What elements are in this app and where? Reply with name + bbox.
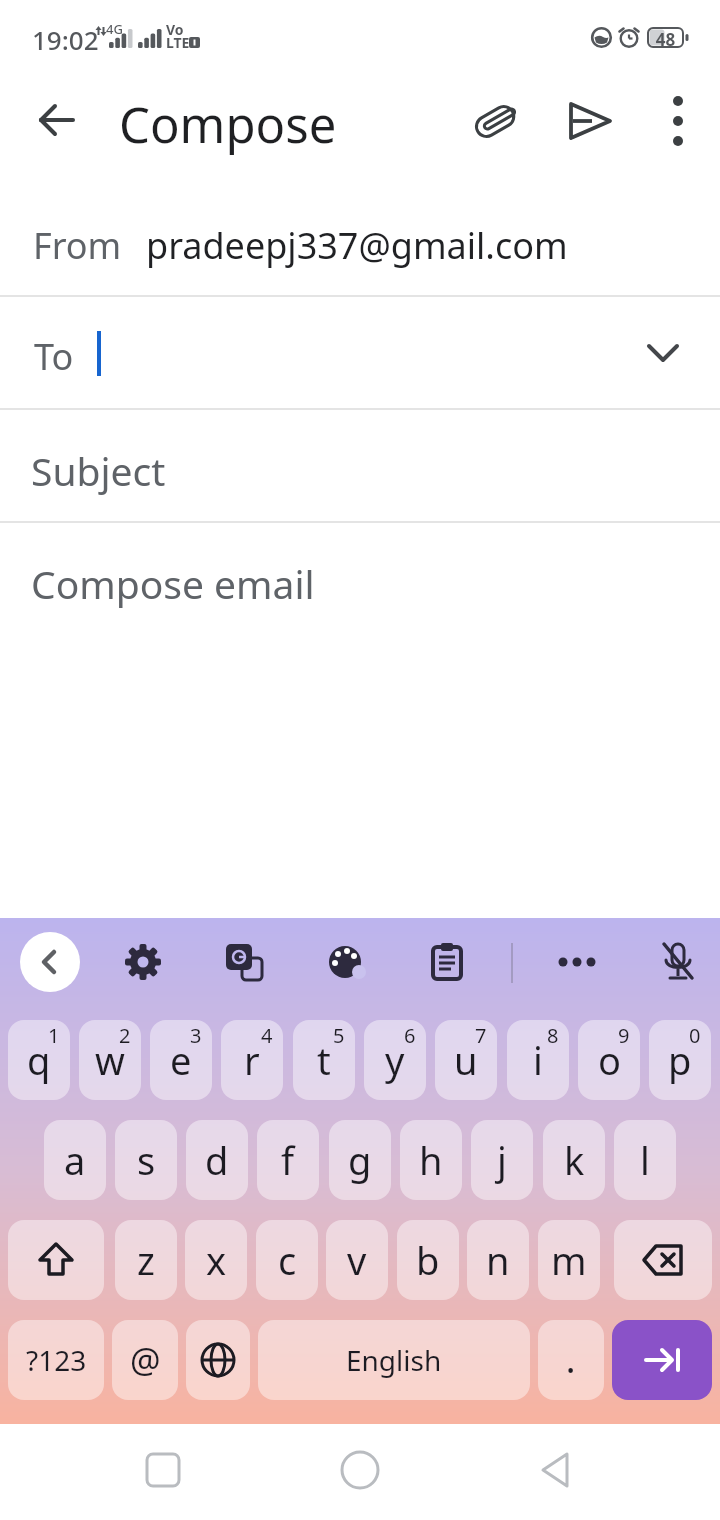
staticText: q bbox=[27, 1034, 51, 1086]
staticText: t bbox=[317, 1034, 331, 1086]
staticText: h bbox=[419, 1134, 443, 1186]
button[interactable]: e bbox=[150, 1020, 212, 1100]
button[interactable] bbox=[33, 96, 81, 144]
button[interactable]: w bbox=[79, 1020, 141, 1100]
staticText: 5 bbox=[333, 1022, 345, 1049]
staticText: c bbox=[278, 1234, 297, 1286]
button[interactable] bbox=[220, 938, 268, 986]
button[interactable]: v bbox=[326, 1220, 388, 1300]
button[interactable] bbox=[614, 1220, 712, 1300]
button[interactable] bbox=[470, 95, 522, 147]
staticText: 9 bbox=[618, 1022, 630, 1049]
staticText: o bbox=[598, 1034, 621, 1086]
staticText: 4G bbox=[106, 20, 123, 38]
staticText: English bbox=[346, 1341, 442, 1379]
button[interactable]: t bbox=[293, 1020, 355, 1100]
staticText: pradeepj337@gmail.com bbox=[146, 221, 568, 270]
staticText: e bbox=[170, 1034, 192, 1086]
button[interactable]: m bbox=[538, 1220, 600, 1300]
staticText: i bbox=[533, 1034, 543, 1086]
staticText: 19:02 bbox=[32, 22, 99, 57]
button[interactable]: y bbox=[364, 1020, 426, 1100]
button[interactable]: n bbox=[467, 1220, 529, 1300]
button[interactable]: r bbox=[221, 1020, 283, 1100]
staticText: From bbox=[33, 221, 122, 270]
button[interactable]: @ bbox=[112, 1320, 178, 1400]
button[interactable] bbox=[20, 932, 80, 992]
staticText: a bbox=[64, 1134, 86, 1186]
staticText: 8 bbox=[547, 1022, 559, 1049]
button[interactable]: f bbox=[257, 1120, 319, 1200]
button[interactable] bbox=[652, 95, 704, 147]
staticText: 2 bbox=[119, 1022, 131, 1049]
button[interactable]: z bbox=[115, 1220, 177, 1300]
staticText: w bbox=[95, 1034, 125, 1086]
staticText: b bbox=[416, 1234, 440, 1286]
button[interactable]: Subject bbox=[0, 410, 720, 521]
staticText: k bbox=[564, 1134, 585, 1186]
button[interactable]: k bbox=[543, 1120, 605, 1200]
staticText: To bbox=[34, 332, 74, 381]
staticText: s bbox=[137, 1134, 156, 1186]
button[interactable] bbox=[564, 95, 616, 147]
button[interactable]: . bbox=[538, 1320, 604, 1400]
staticText: j bbox=[497, 1134, 507, 1186]
staticText: p bbox=[668, 1034, 692, 1086]
button[interactable]: English bbox=[258, 1320, 530, 1400]
button[interactable]: s bbox=[115, 1120, 177, 1200]
staticText: n bbox=[486, 1234, 510, 1286]
staticText: v bbox=[347, 1234, 367, 1286]
button[interactable]: To bbox=[0, 297, 720, 408]
button[interactable]: q bbox=[8, 1020, 70, 1100]
staticText: f bbox=[281, 1134, 295, 1186]
button[interactable] bbox=[119, 938, 167, 986]
staticText: @ bbox=[130, 1337, 161, 1383]
button[interactable] bbox=[8, 1220, 104, 1300]
button[interactable]: c bbox=[256, 1220, 318, 1300]
staticText: 6 bbox=[404, 1022, 416, 1049]
staticText: LTE bbox=[166, 33, 190, 52]
staticText: 1 bbox=[48, 1022, 60, 1049]
button[interactable] bbox=[612, 1320, 712, 1400]
button[interactable] bbox=[186, 1320, 250, 1400]
button[interactable] bbox=[139, 1446, 187, 1494]
staticText: 0 bbox=[689, 1022, 701, 1049]
button[interactable]: o bbox=[578, 1020, 640, 1100]
staticText: d bbox=[205, 1134, 229, 1186]
staticText: 3 bbox=[190, 1022, 202, 1049]
button[interactable] bbox=[423, 938, 471, 986]
staticText: Subject bbox=[31, 444, 166, 497]
button[interactable]: l bbox=[614, 1120, 676, 1200]
button[interactable]: b bbox=[397, 1220, 459, 1300]
staticText: m bbox=[551, 1234, 587, 1286]
staticText: l bbox=[640, 1134, 650, 1186]
button[interactable]: ?123 bbox=[8, 1320, 104, 1400]
button[interactable] bbox=[533, 1446, 581, 1494]
button[interactable] bbox=[336, 1446, 384, 1494]
staticText: . bbox=[566, 1337, 576, 1383]
staticText: 48 bbox=[648, 28, 683, 48]
button[interactable] bbox=[553, 938, 601, 986]
button[interactable]: x bbox=[185, 1220, 247, 1300]
button[interactable]: Compose email bbox=[0, 523, 720, 663]
button[interactable]: u bbox=[435, 1020, 497, 1100]
button[interactable]: i bbox=[507, 1020, 569, 1100]
staticText: Compose bbox=[119, 91, 337, 158]
button[interactable]: a bbox=[44, 1120, 106, 1200]
button[interactable]: h bbox=[400, 1120, 462, 1200]
staticText: y bbox=[385, 1034, 405, 1086]
button[interactable]: d bbox=[186, 1120, 248, 1200]
button[interactable] bbox=[321, 938, 369, 986]
button[interactable] bbox=[654, 938, 702, 986]
staticText: u bbox=[454, 1034, 478, 1086]
button[interactable]: g bbox=[329, 1120, 391, 1200]
staticText: x bbox=[206, 1234, 227, 1286]
button[interactable]: p bbox=[649, 1020, 711, 1100]
button[interactable]: j bbox=[471, 1120, 533, 1200]
staticText: 7 bbox=[475, 1022, 487, 1049]
staticText: g bbox=[348, 1134, 372, 1186]
staticText: r bbox=[244, 1034, 260, 1086]
staticText: ?123 bbox=[26, 1341, 87, 1379]
staticText: 4 bbox=[261, 1022, 273, 1049]
staticText: Compose email bbox=[31, 557, 315, 610]
